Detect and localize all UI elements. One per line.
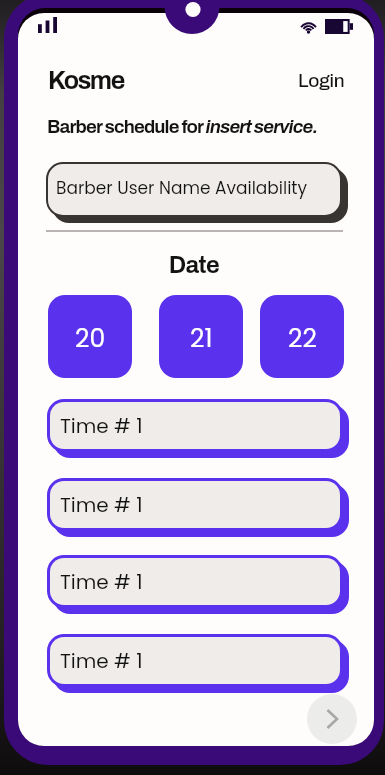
staticText: Time # 1 [60, 647, 143, 675]
staticText: Barber User Name Availability [56, 176, 308, 200]
staticText: Time # 1 [60, 412, 143, 440]
button[interactable]: Time # 1 [50, 481, 340, 528]
staticText: 22 [288, 321, 317, 356]
staticText: Time # 1 [60, 491, 143, 519]
button[interactable]: Barber User Name Availability [48, 164, 340, 215]
button[interactable]: Login [298, 70, 345, 91]
button[interactable]: Next [307, 694, 357, 744]
staticText: Kosme [48, 67, 124, 94]
staticText: 21 [190, 321, 213, 356]
button[interactable]: Time # 1 [50, 637, 340, 684]
button[interactable]: Time # 1 [50, 402, 340, 449]
button[interactable]: 21 [159, 295, 243, 378]
button[interactable]: Time # 1 [50, 558, 340, 605]
staticText: Barber schedule for insert service. [47, 117, 318, 137]
staticText: Time # 1 [60, 568, 143, 596]
staticText: Date [18, 252, 372, 278]
button[interactable]: 20 [48, 295, 132, 378]
staticText: Login [298, 70, 345, 91]
staticText: 20 [75, 321, 106, 356]
button[interactable]: 22 [260, 295, 344, 378]
